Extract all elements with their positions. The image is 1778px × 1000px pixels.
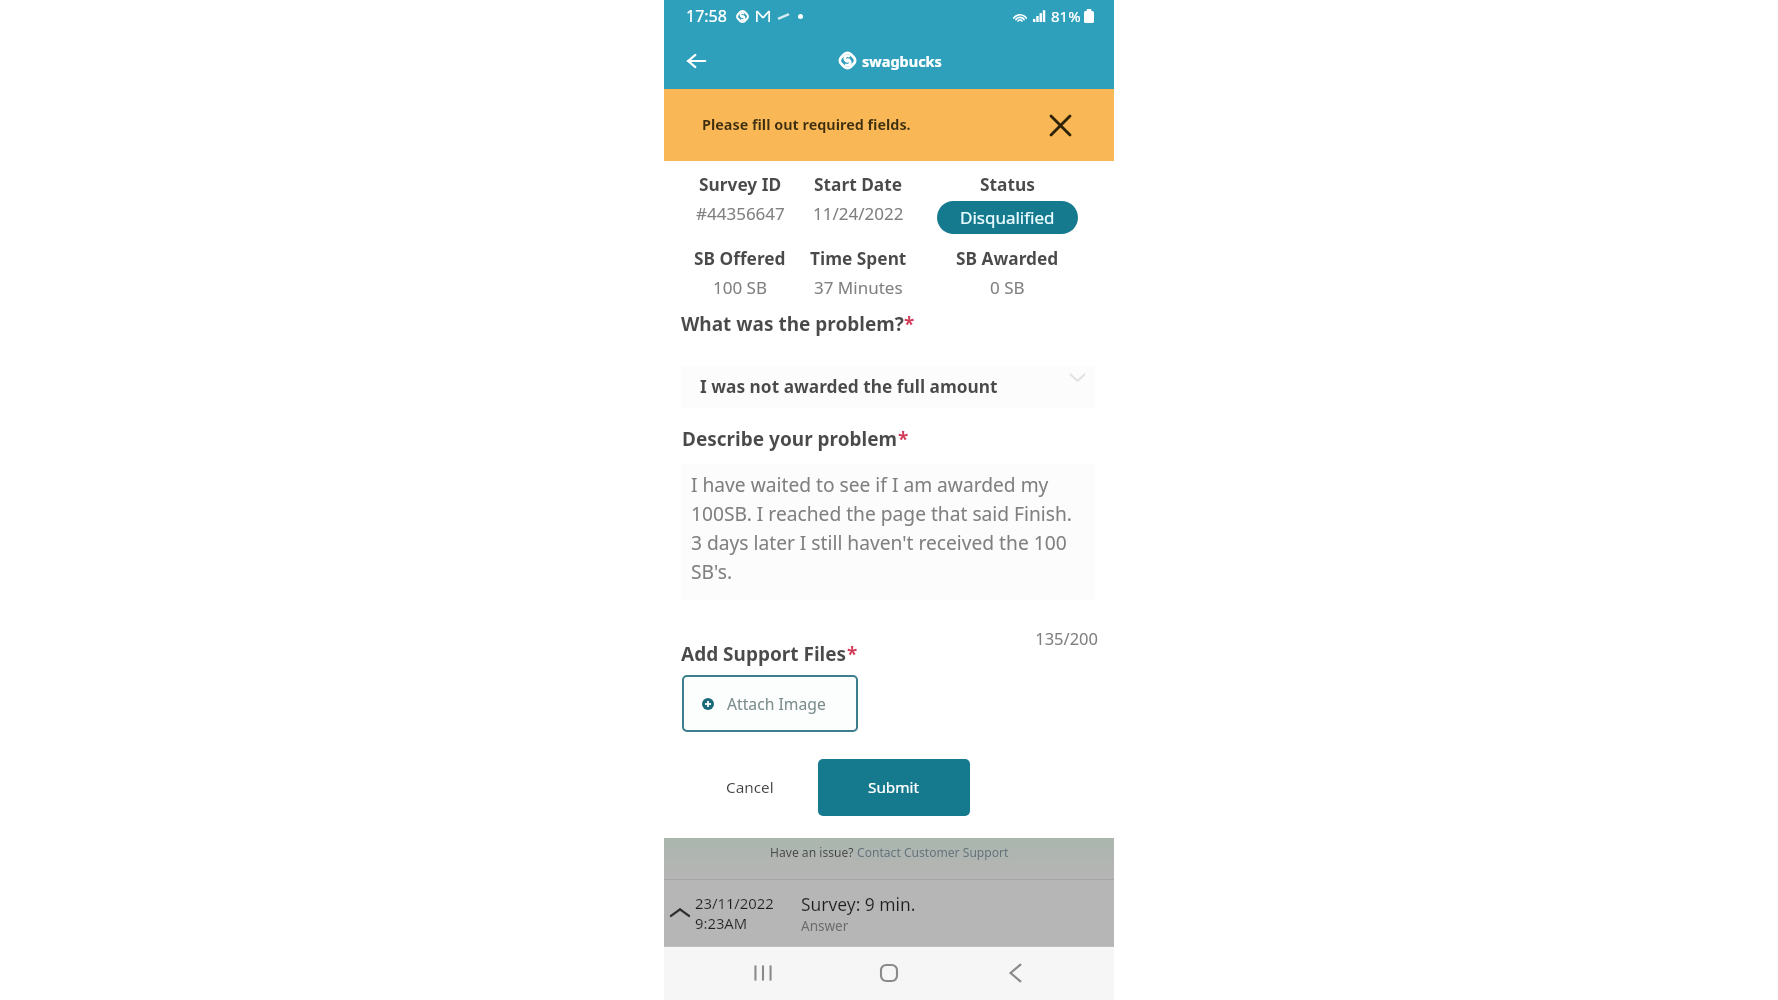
staticText: Status <box>980 173 1035 197</box>
staticText: Survey: 9 min. <box>801 892 916 916</box>
button[interactable]: Back <box>984 946 1046 1000</box>
staticText: Cancel <box>726 777 774 798</box>
staticText: 135/200 <box>664 627 1098 649</box>
staticText: Add Support Files <box>681 641 847 667</box>
staticText: 9:23AM <box>695 913 748 933</box>
button[interactable]: Dismiss <box>1042 107 1078 143</box>
staticText: Time Spent <box>810 247 907 271</box>
staticText: What was the problem? <box>681 311 904 337</box>
staticText: Answer <box>801 917 849 935</box>
staticText: 0 SB <box>990 276 1025 299</box>
staticText: Contact Customer Support <box>857 844 1009 860</box>
staticText: 100 SB <box>713 276 767 299</box>
staticText: 23/11/2022 <box>695 893 774 913</box>
button[interactable]: Submit <box>818 759 970 816</box>
button[interactable]: Home <box>858 946 920 1000</box>
staticText: Please fill out required fields. <box>702 115 911 135</box>
staticText: SB Awarded <box>956 247 1059 271</box>
staticText: 11/24/2022 <box>813 202 904 225</box>
staticText: Start Date <box>814 173 902 197</box>
button[interactable]: Recents <box>732 946 794 1000</box>
staticText: Disqualified <box>960 206 1055 229</box>
button[interactable]: Disqualified <box>937 201 1078 234</box>
staticText: Attach Image <box>727 693 826 714</box>
staticText: swagbucks <box>862 51 942 71</box>
button[interactable]: Attach Image <box>682 675 858 732</box>
staticText: SB Offered <box>694 247 786 271</box>
staticText: Describe your problem <box>682 426 898 452</box>
staticText: Submit <box>868 777 920 798</box>
staticText: 81% <box>1051 6 1081 26</box>
button[interactable]: Cancel <box>716 768 784 807</box>
button[interactable]: Have an issue? <box>770 844 1009 860</box>
staticText: 37 Minutes <box>814 276 903 299</box>
button[interactable]: 23/11/2022 <box>664 880 1114 946</box>
staticText: * <box>898 426 909 452</box>
staticText: I have waited to see if I am awarded my … <box>691 471 1086 584</box>
staticText: I was not awarded the full amount <box>700 375 998 399</box>
staticText: 17:58 <box>686 5 727 27</box>
button[interactable]: I was not awarded the full amount <box>681 366 1095 408</box>
staticText: Have an issue? <box>770 844 857 860</box>
staticText: #44356647 <box>696 202 785 225</box>
staticText: * <box>847 641 858 667</box>
staticText: * <box>904 311 915 337</box>
staticText: Survey ID <box>699 173 782 197</box>
button[interactable]: Back <box>677 42 715 80</box>
